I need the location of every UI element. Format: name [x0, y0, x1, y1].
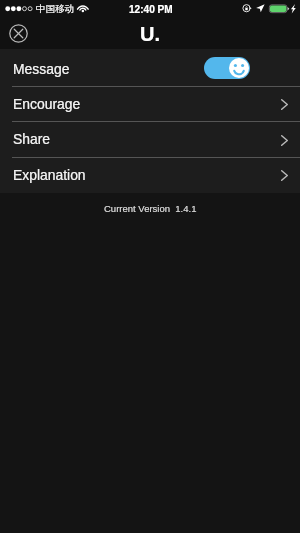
staticText: Message: [13, 61, 70, 77]
staticText: Explanation: [13, 167, 86, 183]
staticText: U.: [140, 23, 160, 45]
button[interactable]: Share: [0, 122, 300, 158]
button[interactable]: Encourage: [0, 87, 300, 122]
staticText: 中国移动: [36, 3, 74, 15]
staticText: Share: [13, 131, 51, 147]
staticText: Encourage: [13, 96, 81, 112]
staticText: 12:40 PM: [129, 4, 173, 15]
button[interactable]: Message: [0, 49, 300, 87]
button[interactable]: Explanation: [0, 158, 300, 193]
button[interactable]: Message toggle: [204, 57, 250, 79]
staticText: Current Version 1.4.1: [104, 203, 197, 214]
button[interactable]: Close: [7, 22, 30, 45]
